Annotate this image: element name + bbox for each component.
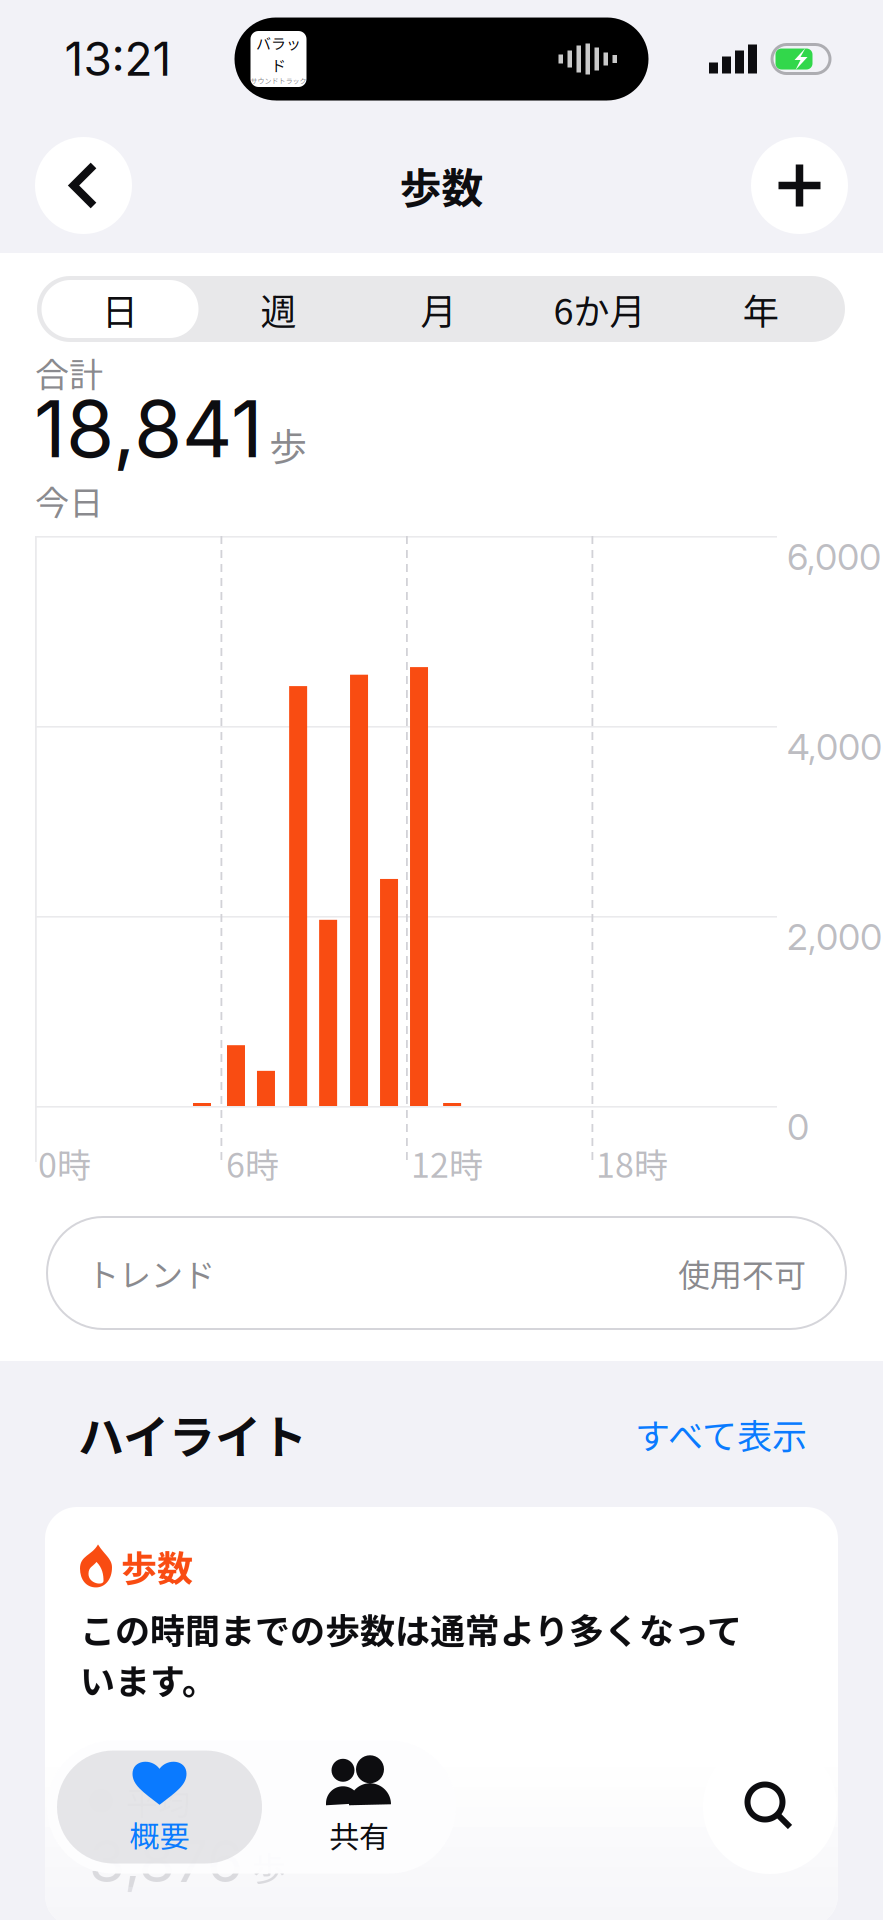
- staticText: 4,000: [787, 725, 882, 769]
- button[interactable]: すべて表示: [635, 1409, 807, 1459]
- staticText: ド: [271, 54, 286, 76]
- staticText: 6,000: [787, 535, 881, 579]
- staticText: 18時: [596, 1138, 668, 1188]
- button[interactable]: 年: [680, 280, 840, 338]
- staticText: 月: [420, 283, 456, 335]
- staticText: 年: [742, 283, 778, 335]
- button[interactable]: 検索: [703, 1740, 837, 1874]
- staticText: 週: [260, 283, 296, 335]
- staticText: 歩数: [399, 155, 483, 216]
- staticText: 歩数: [121, 1540, 193, 1592]
- staticText: 使用不可: [678, 1250, 806, 1296]
- staticText: 歩: [252, 1842, 286, 1891]
- button[interactable]: 戻る: [35, 137, 132, 234]
- staticText: ハイライト: [78, 1401, 307, 1467]
- staticText: 12時: [411, 1138, 483, 1188]
- button[interactable]: 共有: [262, 1750, 456, 1863]
- staticText: 平均: [126, 1778, 190, 1824]
- staticText: います。: [80, 1654, 217, 1705]
- button[interactable]: 月: [358, 280, 518, 338]
- button[interactable]: 週: [198, 280, 358, 338]
- staticText: 今日: [35, 476, 103, 525]
- button[interactable]: 日: [41, 280, 198, 338]
- button[interactable]: 6か月: [518, 280, 680, 338]
- staticText: 歩: [269, 417, 307, 472]
- staticText: サウンドトラック: [250, 76, 306, 86]
- staticText: 共有: [329, 1813, 389, 1857]
- staticText: 18,841: [34, 382, 263, 476]
- staticText: 概要: [129, 1813, 189, 1856]
- staticText: トレンド: [87, 1250, 215, 1296]
- staticText: この時間までの歩数は通常より多くなって: [80, 1603, 742, 1654]
- staticText: バラッ: [256, 32, 301, 54]
- staticText: 日: [102, 283, 138, 335]
- staticText: 13:21: [64, 31, 171, 87]
- staticText: すべて表示: [635, 1409, 807, 1459]
- staticText: 合計: [35, 348, 103, 397]
- staticText: 6か月: [553, 283, 645, 335]
- button[interactable]: 概要: [57, 1750, 262, 1863]
- button[interactable]: 歩数: [45, 1507, 838, 1920]
- staticText: 3,876: [89, 1826, 243, 1896]
- button[interactable]: トレンド: [47, 1217, 846, 1329]
- staticText: 6時: [226, 1138, 279, 1188]
- button[interactable]: 追加: [751, 137, 848, 234]
- staticText: 0時: [38, 1138, 91, 1188]
- staticText: 0: [787, 1105, 809, 1149]
- staticText: 2,000: [787, 915, 882, 959]
